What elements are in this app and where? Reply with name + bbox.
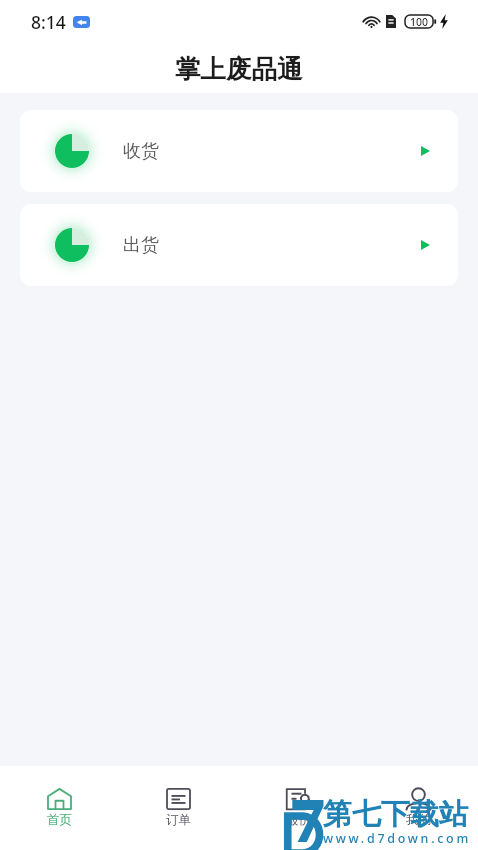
button[interactable]: 报价 (238, 766, 358, 850)
staticText: 出货 (123, 234, 159, 257)
staticText: 收货 (123, 140, 159, 163)
staticText: 报价 (286, 812, 311, 828)
button[interactable]: 订单 (119, 766, 238, 850)
staticText: 我的 (406, 812, 431, 828)
button[interactable]: 出货 (20, 204, 458, 286)
staticText: 订单 (166, 812, 191, 828)
staticText: 第七下载站 (323, 796, 468, 833)
button[interactable]: 首页 (0, 766, 119, 850)
staticText: 100 (410, 15, 429, 28)
staticText: 8:14 (31, 10, 66, 34)
button[interactable]: 收货 (20, 110, 458, 192)
button[interactable]: 我的 (358, 766, 478, 850)
staticText: 掌上废品通 (175, 53, 303, 85)
staticText: www.d7down.com (323, 830, 471, 847)
staticText: 首页 (47, 812, 72, 828)
